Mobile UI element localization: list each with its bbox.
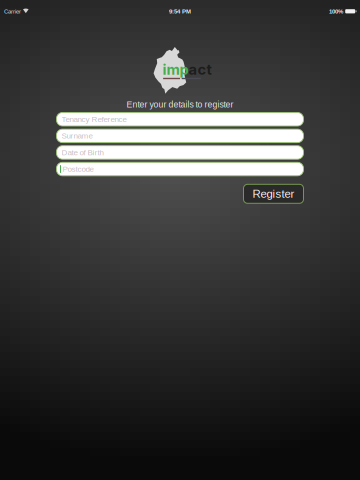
- button[interactable]: Postcode: [56, 162, 303, 176]
- button[interactable]: Tenancy Reference: [56, 112, 303, 126]
- staticText: act: [189, 61, 212, 78]
- button[interactable]: Surname: [56, 129, 303, 143]
- staticText: 9:54 PM: [169, 8, 191, 15]
- staticText: imp: [163, 61, 189, 78]
- staticText: Register: [252, 187, 294, 200]
- button[interactable]: Date of Birth: [56, 146, 303, 159]
- button[interactable]: Register: [243, 184, 303, 203]
- staticText: Date of Birth: [61, 148, 103, 157]
- staticText: Enter your details to register: [126, 100, 233, 109]
- staticText: Postcode: [62, 165, 93, 173]
- staticText: Carrier: [4, 8, 21, 15]
- staticText: Surname: [61, 131, 92, 140]
- staticText: 100%: [329, 8, 343, 15]
- staticText: Tenancy Reference: [61, 115, 126, 124]
